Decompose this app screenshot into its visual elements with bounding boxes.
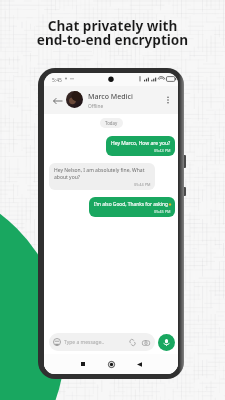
staticText: 05:43 PM <box>154 148 171 153</box>
button[interactable]: Back <box>132 357 146 371</box>
staticText: Type a message.. <box>64 339 105 346</box>
button[interactable]: Camera <box>141 338 150 347</box>
button[interactable]: I'm also Good, Thanks for asking <box>89 197 175 217</box>
staticText: 5:45 <box>52 77 62 84</box>
button[interactable]: Home <box>104 357 118 371</box>
staticText: 05:45 PM <box>154 209 171 214</box>
staticText: Marco Medici <box>88 92 133 102</box>
button[interactable]: Back <box>51 94 65 108</box>
staticText: Chat privately with end-to-end encryptio… <box>0 16 225 49</box>
button[interactable]: Attach file <box>128 338 137 347</box>
button[interactable]: Record voice message <box>158 334 175 351</box>
button[interactable]: Type a message.. <box>49 333 155 351</box>
staticText: Offline <box>88 103 104 110</box>
button[interactable]: Hey Nelson, I am absolutely fine, What a… <box>49 163 155 190</box>
staticText: Hey Marco, How are you? <box>111 140 171 147</box>
button[interactable]: Hey Marco, How are you? <box>106 136 175 156</box>
staticText: I'm also Good, Thanks for asking <box>94 201 169 208</box>
button[interactable]: Recent apps <box>76 357 90 371</box>
button[interactable]: More options <box>162 94 174 106</box>
staticText: 05:44 PM <box>134 182 151 187</box>
staticText: Today <box>105 120 118 126</box>
staticText: Hey Nelson, I am absolutely fine, What a… <box>54 167 151 181</box>
